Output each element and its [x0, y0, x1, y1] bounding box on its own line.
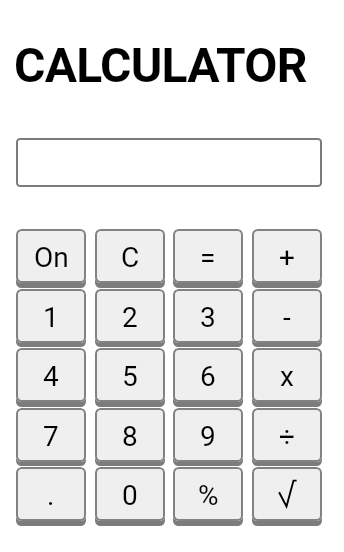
button[interactable]: = [173, 229, 243, 283]
staticText: + [279, 241, 295, 274]
staticText: . [47, 479, 55, 512]
button[interactable] [16, 138, 322, 187]
button[interactable]: + [252, 229, 322, 283]
staticText: 2 [122, 301, 138, 334]
button[interactable]: 3 [173, 289, 243, 343]
button[interactable]: ÷ [252, 408, 322, 462]
staticText: % [198, 479, 219, 512]
staticText: 0 [122, 479, 138, 512]
staticText: 6 [200, 360, 216, 393]
button[interactable]: On [16, 229, 86, 283]
staticText: = [200, 241, 216, 274]
button[interactable]: 7 [16, 408, 86, 462]
button[interactable]: 4 [16, 348, 86, 402]
button[interactable]: 9 [173, 408, 243, 462]
staticText: 1 [43, 301, 59, 334]
staticText: On [34, 241, 69, 274]
staticText: 9 [200, 420, 216, 453]
button[interactable]: 6 [173, 348, 243, 402]
staticText: 3 [200, 301, 216, 334]
staticText: CALCULATOR [14, 37, 307, 93]
staticText: 4 [43, 360, 59, 393]
staticText: ÷ [279, 420, 295, 453]
button[interactable]: C [95, 229, 165, 283]
button[interactable]: 0 [95, 467, 165, 521]
button[interactable]: . [16, 467, 86, 521]
button[interactable] [252, 467, 322, 521]
staticText: C [121, 241, 140, 274]
staticText: 8 [122, 420, 138, 453]
button[interactable]: 2 [95, 289, 165, 343]
staticText: - [283, 301, 291, 334]
button[interactable]: 8 [95, 408, 165, 462]
button[interactable]: 5 [95, 348, 165, 402]
button[interactable]: 1 [16, 289, 86, 343]
button[interactable]: - [252, 289, 322, 343]
button[interactable]: x [252, 348, 322, 402]
staticText: x [280, 360, 294, 393]
button[interactable]: % [173, 467, 243, 521]
staticText: 7 [43, 420, 59, 453]
staticText: 5 [122, 360, 138, 393]
